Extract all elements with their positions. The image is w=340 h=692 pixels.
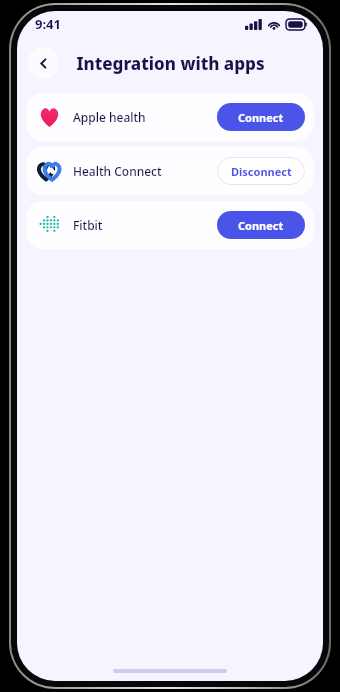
staticText: Apple health [73,109,146,125]
button[interactable]: Apple health [26,93,314,141]
staticText: Integration with apps [76,52,265,75]
button[interactable]: Fitbit [26,201,314,249]
staticText: Fitbit [73,217,103,233]
button[interactable]: Connect [217,103,305,131]
button[interactable]: Disconnect [217,157,305,185]
staticText: Disconnect [231,164,292,179]
button[interactable]: Health Connect [26,147,314,195]
button[interactable]: Back [27,47,59,79]
staticText: Connect [238,110,284,125]
staticText: 9:41 [35,15,61,33]
button[interactable]: Connect [217,211,305,239]
staticText: Connect [238,218,284,233]
staticText: Health Connect [73,163,162,179]
